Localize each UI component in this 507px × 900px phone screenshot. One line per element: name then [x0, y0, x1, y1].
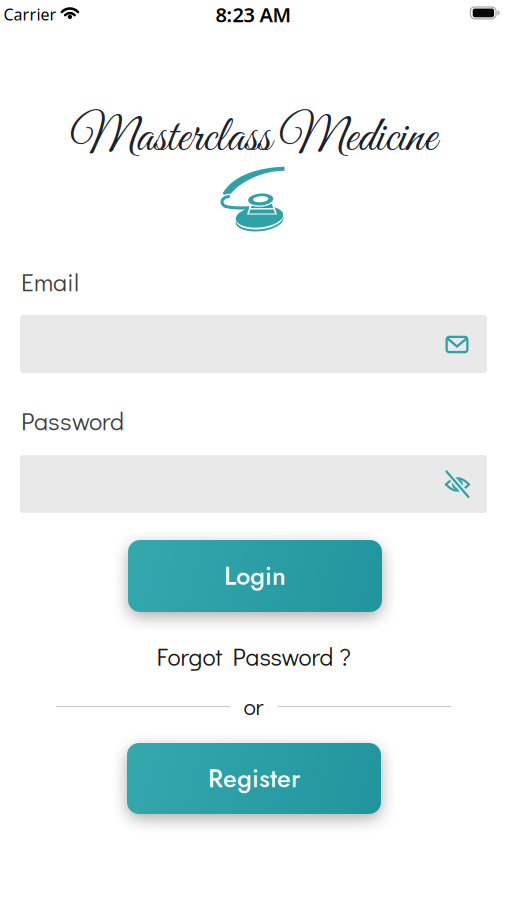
- staticText: Register: [208, 760, 300, 797]
- staticText: 8:23 AM: [215, 1, 291, 28]
- button[interactable]: Register: [127, 743, 381, 814]
- staticText: Password: [21, 404, 124, 437]
- staticText: Email: [21, 265, 79, 298]
- button[interactable]: Email: [20, 315, 487, 373]
- button[interactable]: Login: [128, 540, 382, 612]
- staticText: or: [243, 691, 263, 721]
- staticText: Login: [224, 558, 286, 594]
- staticText: Forgot Password ?: [156, 640, 350, 672]
- button[interactable]: Forgot Password ?: [156, 640, 350, 672]
- staticText: Masterclass Medicine: [70, 108, 437, 170]
- staticText: Carrier: [3, 4, 56, 25]
- button[interactable]: Password: [20, 455, 487, 513]
